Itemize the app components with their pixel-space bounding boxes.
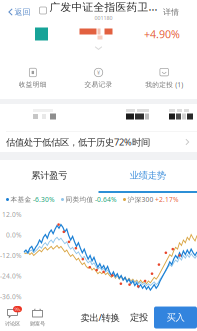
- staticText: 详情: [163, 7, 179, 17]
- staticText: -36.0%: [0, 292, 22, 301]
- staticText: -24.0%: [0, 272, 22, 280]
- staticText: +4.90%: [144, 27, 180, 41]
- button[interactable]: 业绩走势: [98, 160, 197, 193]
- staticText: 本基金: [10, 195, 31, 204]
- button[interactable]: 99+: [0, 304, 25, 331]
- button[interactable]: ¥: [66, 68, 131, 89]
- button[interactable]: 返回: [0, 2, 30, 22]
- staticText: 001180: [94, 14, 112, 21]
- staticText: 业绩走势: [130, 170, 166, 181]
- staticText: 讨论区: [5, 320, 20, 327]
- button[interactable]: 卖出/转换: [76, 304, 124, 331]
- button[interactable]: 估值处于低估区，低于历史72%时间: [0, 132, 197, 152]
- button[interactable]: 收益明细: [0, 68, 66, 89]
- staticText: -12.0%: [0, 251, 22, 260]
- staticText: 估值处于低估区，低于历史72%时间: [6, 136, 150, 148]
- button[interactable]: 买入: [154, 306, 197, 328]
- button[interactable]: 财富号: [25, 304, 50, 331]
- staticText: 卖出/转换: [80, 311, 119, 324]
- button[interactable]: 定投: [124, 304, 154, 331]
- staticText: 广发中证全指医药卫...: [49, 0, 157, 14]
- staticText: 沪深300: [127, 195, 153, 204]
- staticText: +2.17%: [155, 195, 179, 204]
- staticText: 累计盈亏: [31, 170, 67, 181]
- staticText: ¥: [97, 69, 100, 76]
- button[interactable]: 我的定投 (1): [131, 68, 197, 89]
- staticText: 财富号: [30, 320, 45, 327]
- staticText: 99+: [14, 306, 20, 312]
- staticText: 同类均值: [65, 195, 93, 204]
- staticText: 返回: [14, 7, 30, 17]
- staticText: 定投: [130, 312, 148, 323]
- staticText: -6.30%: [33, 195, 55, 204]
- staticText: 买入: [166, 312, 184, 323]
- staticText: 我的定投 (1): [145, 80, 183, 89]
- staticText: 12.0%: [2, 210, 22, 219]
- staticText: -0.64%: [95, 195, 117, 204]
- staticText: 收益明细: [19, 80, 47, 89]
- button[interactable]: 累计盈亏: [0, 160, 98, 193]
- button[interactable]: 详情: [163, 2, 197, 22]
- staticText: 0.0%: [6, 230, 22, 239]
- staticText: 交易记录: [84, 80, 112, 89]
